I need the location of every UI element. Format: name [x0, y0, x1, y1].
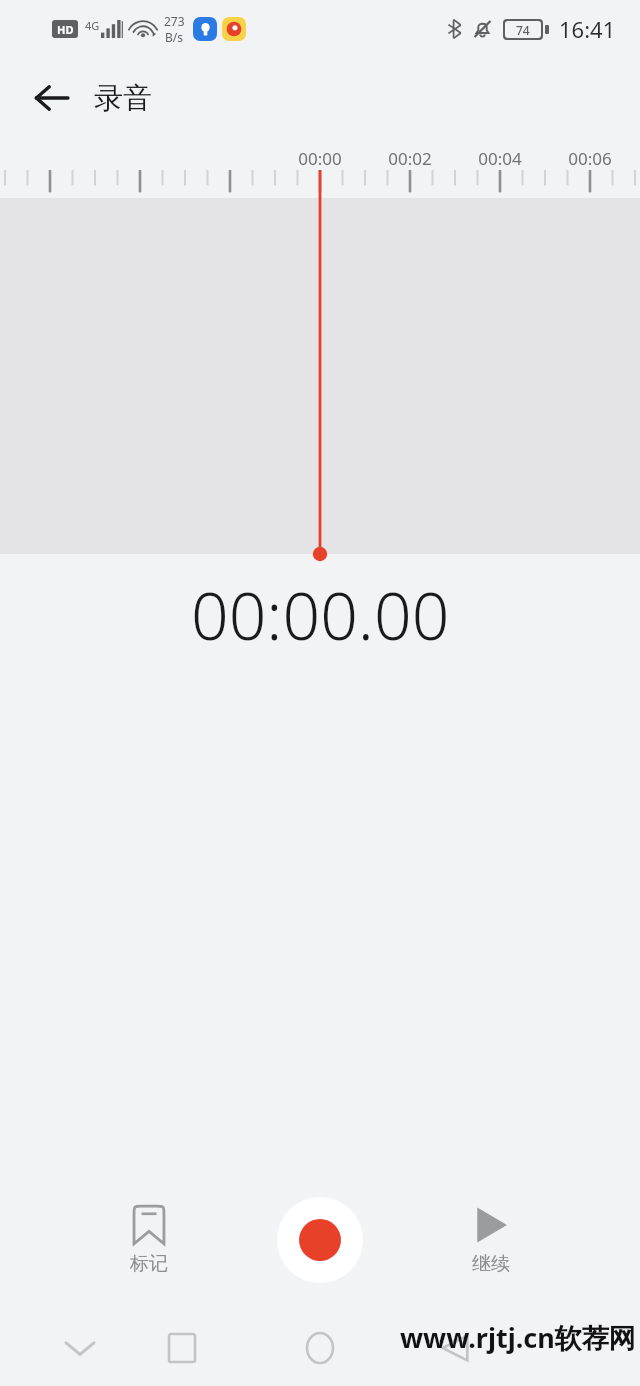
button[interactable]: Home [290, 1318, 350, 1378]
staticText: 4G [85, 18, 100, 33]
staticText: 00:06 [545, 147, 635, 170]
staticText: B/s [165, 29, 184, 45]
staticText: 录音 [94, 80, 152, 117]
staticText: 继续 [472, 1252, 510, 1276]
button[interactable]: Recents [152, 1318, 212, 1378]
staticText: 00:00 [275, 147, 365, 170]
button[interactable]: Record [277, 1197, 363, 1283]
staticText: 标记 [130, 1252, 168, 1276]
staticText: 16:41 [559, 14, 616, 44]
staticText: 00:00.00 [191, 569, 450, 659]
staticText: 00:02 [365, 147, 455, 170]
button[interactable]: 标记 [89, 1199, 209, 1282]
staticText: 273 [164, 13, 185, 29]
button[interactable]: Back [425, 1318, 485, 1378]
staticText: www.rjtj.cn软荐网 [400, 1319, 636, 1356]
button[interactable]: 继续 [431, 1199, 551, 1282]
staticText: HD [57, 22, 74, 37]
button[interactable]: Back [22, 68, 82, 128]
button[interactable]: Hide [50, 1318, 110, 1378]
staticText: 74 [516, 22, 530, 38]
staticText: 00:04 [455, 147, 545, 170]
